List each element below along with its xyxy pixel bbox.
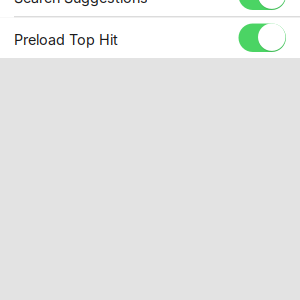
button[interactable]: Search Suggestions	[0, 0, 300, 16]
staticText: Search Suggestions	[14, 0, 148, 6]
button[interactable]: Preload Top Hit	[0, 17, 300, 58]
staticText: Preload Top Hit	[14, 31, 118, 48]
